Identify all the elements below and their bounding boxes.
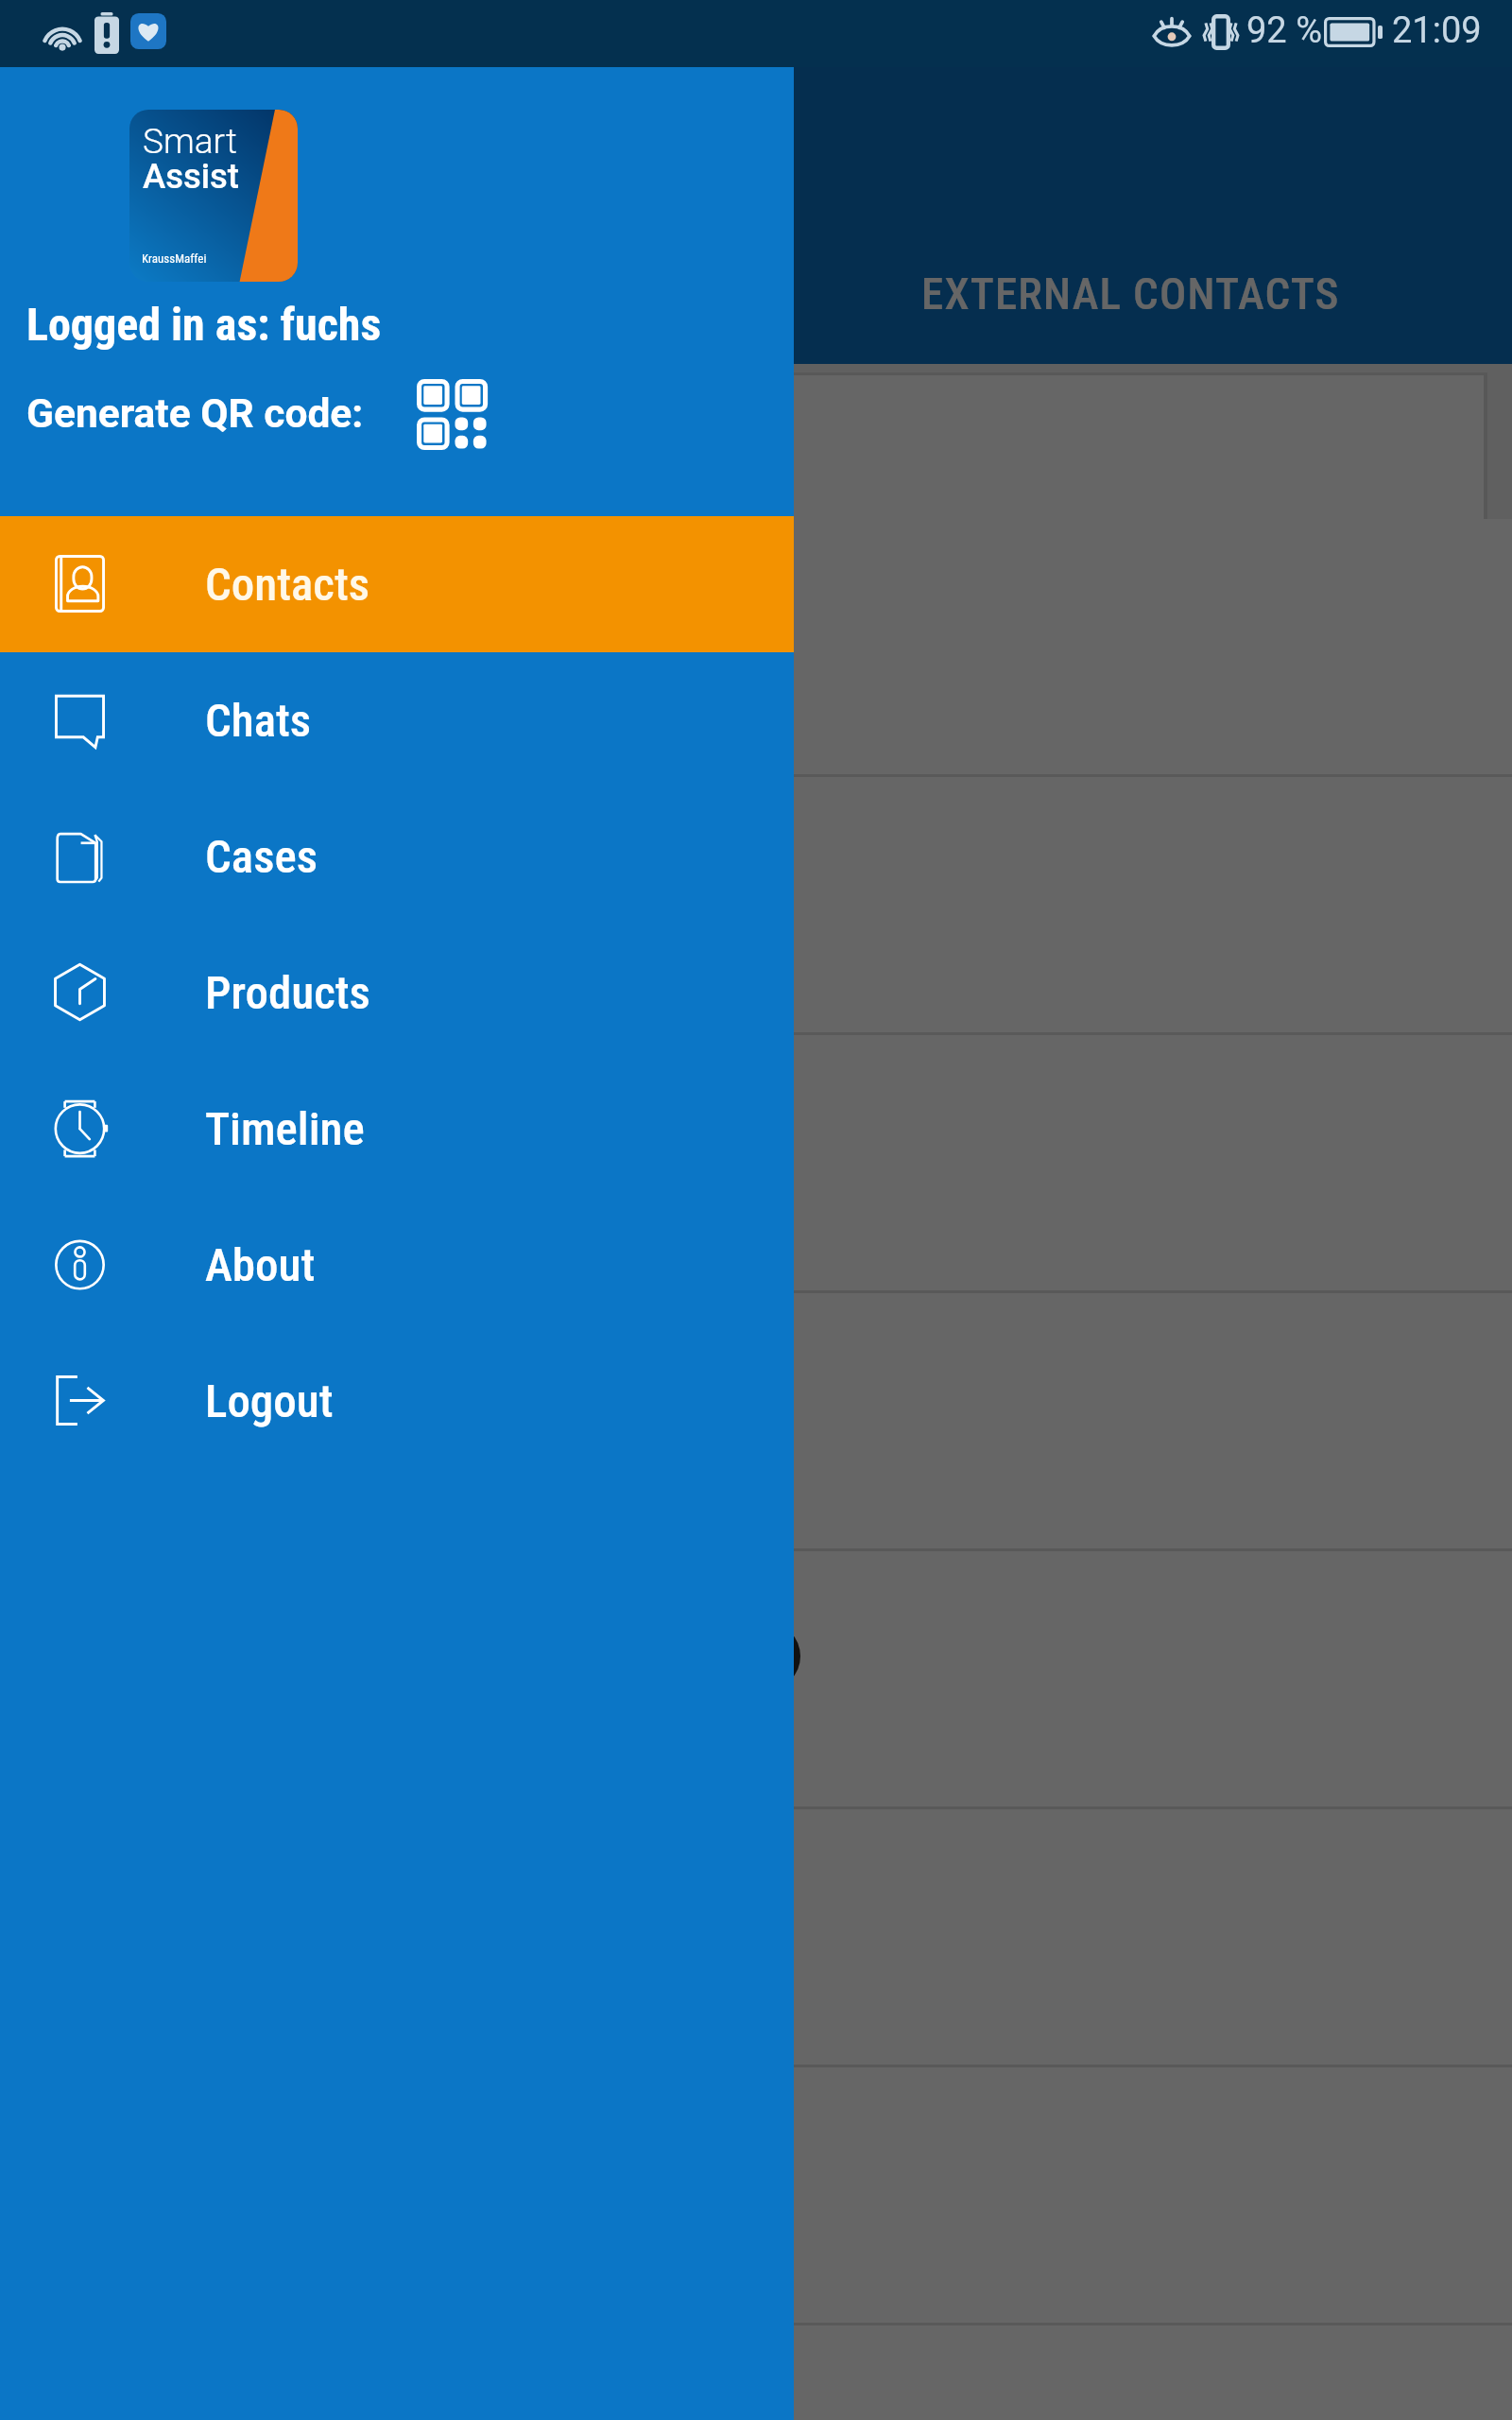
staticText: EXTERNAL CONTACTS — [921, 268, 1340, 320]
button[interactable] — [0, 777, 1512, 1035]
button[interactable]: Contacts — [0, 516, 794, 652]
button[interactable] — [0, 1293, 1512, 1551]
staticText: 92 % — [1246, 9, 1322, 52]
other: App notification — [130, 13, 166, 49]
staticText: Timeline — [205, 1102, 365, 1156]
button[interactable]: Logout — [0, 1333, 794, 1469]
staticText: Logout — [205, 1374, 334, 1428]
other: Generate QR code — [417, 379, 487, 449]
button[interactable] — [0, 1035, 1512, 1293]
other: Vibration mode — [1199, 11, 1243, 53]
staticText: Generate QR code: — [26, 390, 364, 438]
other: Wi-Fi — [42, 13, 83, 53]
button[interactable]: Cases — [0, 788, 794, 925]
button[interactable]: About — [0, 1197, 794, 1333]
staticText: 21:09 — [1392, 9, 1482, 52]
other: Eye comfort — [1153, 16, 1191, 48]
staticText: Contacts — [205, 558, 370, 612]
button[interactable]: Close navigation drawer — [0, 0, 1512, 2420]
button[interactable] — [0, 2067, 1512, 2325]
staticText: Logged in as: fuchs — [26, 298, 382, 351]
staticText: Products — [205, 966, 370, 1020]
button[interactable] — [0, 1551, 1512, 1809]
staticText: Smart — [143, 121, 237, 162]
other: Battery low — [94, 12, 119, 54]
button[interactable]: Generate QR code: — [0, 367, 794, 461]
staticText: Assist — [143, 156, 240, 197]
button[interactable] — [0, 2325, 1512, 2420]
button[interactable]: Timeline — [0, 1061, 794, 1197]
button[interactable]: Products — [0, 925, 794, 1061]
staticText: KraussMaffei — [142, 251, 207, 266]
staticText: Cases — [205, 830, 318, 884]
button[interactable] — [17, 375, 1484, 519]
staticText: About — [205, 1238, 316, 1292]
button[interactable]: Chats — [0, 652, 794, 788]
button[interactable] — [0, 1809, 1512, 2067]
button[interactable] — [0, 519, 1512, 777]
other: Battery — [1324, 17, 1383, 47]
staticText: Chats — [205, 694, 312, 748]
